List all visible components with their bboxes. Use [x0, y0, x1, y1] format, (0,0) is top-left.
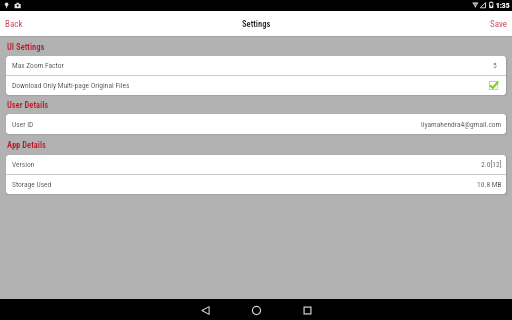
staticText: User Details: [7, 100, 49, 110]
button[interactable]: Max Zoom Factor: [6, 56, 506, 75]
button[interactable]: Home: [246, 299, 267, 320]
staticText: Max Zoom Factor: [12, 61, 64, 70]
staticText: 2.0[12]: [481, 160, 502, 169]
staticText: App Details: [7, 140, 46, 150]
button[interactable]: Save: [484, 12, 512, 36]
staticText: Save: [490, 19, 507, 30]
staticText: Storage Used: [12, 180, 52, 189]
staticText: Settings: [242, 19, 271, 29]
staticText: liyamahendra4@gmail.com: [421, 120, 502, 129]
staticText: Download Only Multi-page Original Files: [12, 81, 130, 90]
staticText: 1:35: [496, 1, 510, 10]
button[interactable]: Version: [6, 155, 506, 174]
button[interactable]: Download Only Multi-page Original Files: [6, 76, 506, 95]
staticText: 10.8 MB: [477, 180, 502, 189]
staticText: Version: [12, 160, 35, 169]
button[interactable]: User ID: [6, 114, 506, 134]
button[interactable]: Back: [195, 299, 216, 320]
staticText: Back: [5, 19, 23, 30]
staticText: UI Settings: [7, 42, 45, 52]
staticText: 5: [493, 61, 497, 70]
button[interactable]: Storage Used: [6, 175, 506, 194]
staticText: User ID: [12, 120, 34, 129]
button[interactable]: Back: [0, 12, 29, 36]
button[interactable]: Recent apps: [297, 299, 318, 320]
